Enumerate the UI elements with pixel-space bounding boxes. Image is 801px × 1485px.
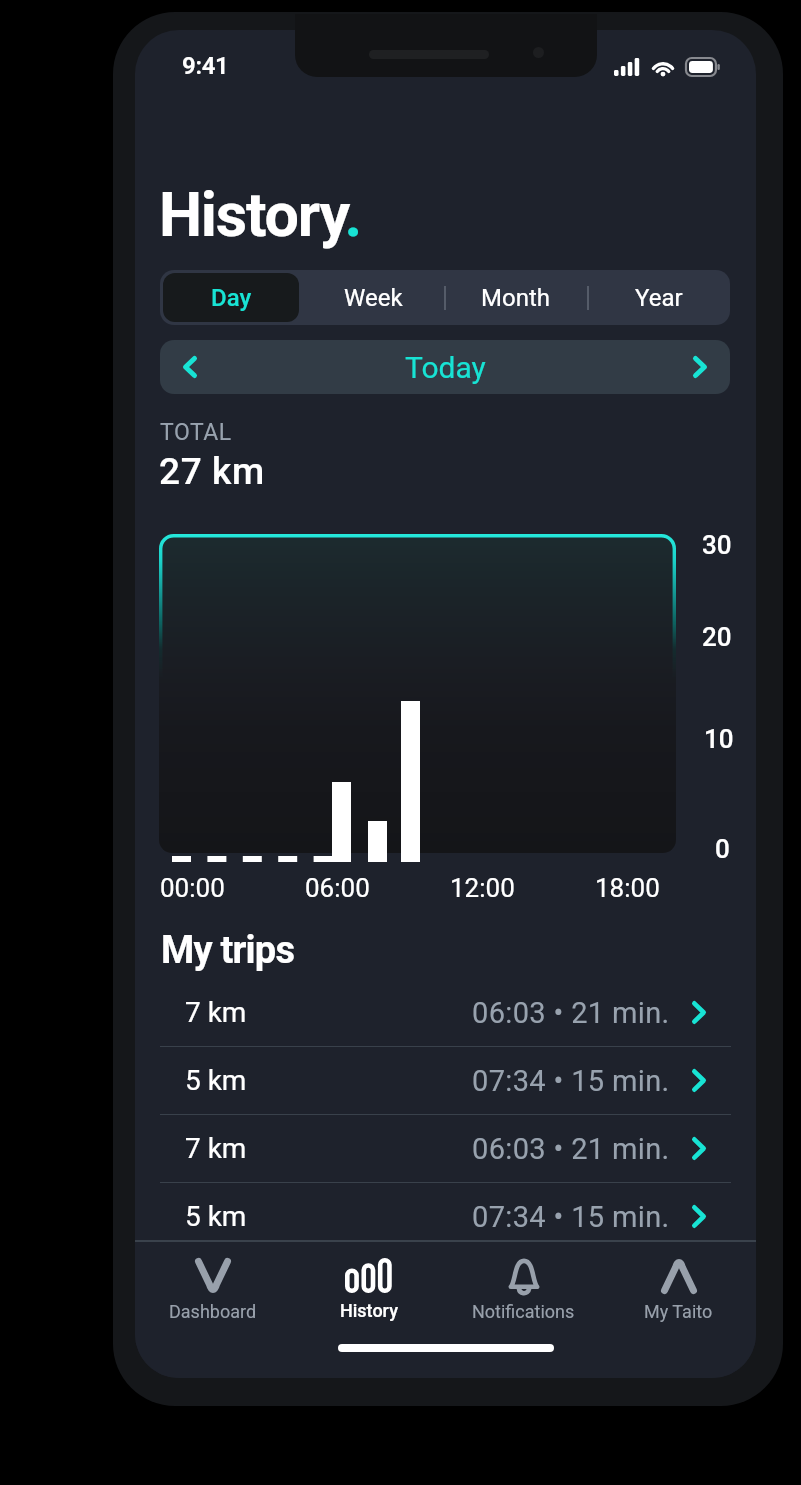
- staticText: TOTAL: [160, 419, 232, 446]
- staticText: History: [340, 1300, 398, 1321]
- button[interactable]: Month: [444, 270, 587, 325]
- staticText: 00:00: [160, 873, 225, 903]
- button[interactable]: 5 km: [135, 1183, 756, 1251]
- button[interactable]: History: [291, 1242, 446, 1332]
- button[interactable]: 7 km: [135, 979, 756, 1047]
- button[interactable]: Notifications: [446, 1242, 601, 1332]
- staticText: 18:00: [595, 873, 660, 903]
- button[interactable]: My Taito: [601, 1242, 756, 1332]
- button[interactable]: Next day: [670, 340, 730, 394]
- staticText: 5 km: [185, 1200, 247, 1233]
- staticText: 10: [704, 724, 734, 754]
- staticText: 0: [715, 834, 730, 864]
- button[interactable]: Dashboard: [135, 1242, 291, 1332]
- button[interactable]: 5 km: [135, 1047, 756, 1115]
- staticText: Month: [481, 284, 550, 312]
- staticText: Dashboard: [169, 1301, 257, 1322]
- staticText: 7 km: [185, 996, 247, 1029]
- staticText: Notifications: [472, 1301, 575, 1322]
- staticText: My trips: [161, 928, 295, 973]
- staticText: 07:34 • 15 min.: [472, 1200, 670, 1234]
- staticText: Today: [405, 350, 486, 385]
- staticText: 07:34 • 15 min.: [472, 1064, 670, 1098]
- staticText: 20: [702, 622, 732, 652]
- staticText: My Taito: [644, 1301, 713, 1322]
- button[interactable]: 7 km: [135, 1115, 756, 1183]
- staticText: Week: [344, 284, 403, 312]
- button[interactable]: Previous day: [160, 340, 220, 394]
- staticText: 06:00: [305, 873, 370, 903]
- staticText: Day: [211, 284, 252, 312]
- staticText: 7 km: [185, 1132, 247, 1165]
- button[interactable]: Day: [160, 270, 302, 325]
- staticText: 27 km: [159, 450, 265, 493]
- staticText: 30: [702, 530, 732, 560]
- button[interactable]: Week: [302, 270, 444, 325]
- staticText: 5 km: [185, 1064, 247, 1097]
- staticText: 9:41: [182, 52, 229, 80]
- button[interactable]: Year: [587, 270, 730, 325]
- staticText: Year: [635, 284, 683, 312]
- staticText: 06:03 • 21 min.: [472, 1132, 670, 1166]
- staticText: History.: [159, 179, 362, 250]
- staticText: 06:03 • 21 min.: [472, 996, 670, 1030]
- staticText: 12:00: [450, 873, 515, 903]
